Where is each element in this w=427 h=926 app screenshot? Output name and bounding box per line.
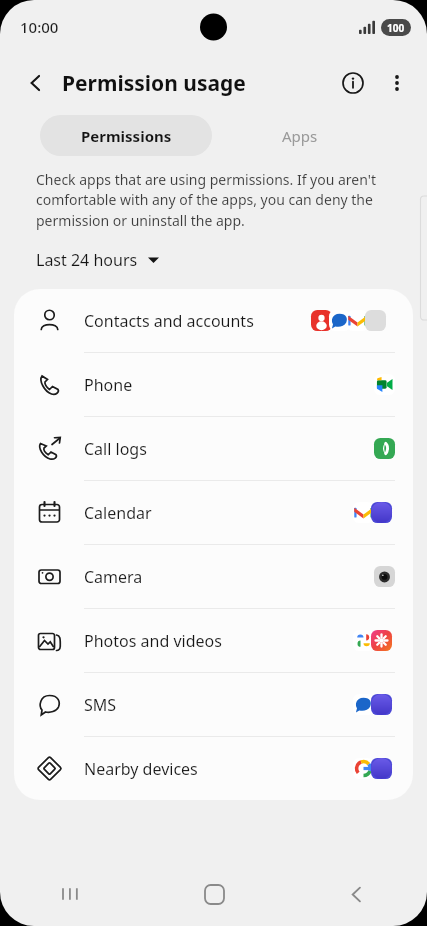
staticText: Permission usage xyxy=(62,69,246,98)
staticText: Photos and videos xyxy=(84,630,353,652)
button[interactable]: Nearby devices xyxy=(14,737,413,800)
staticText: Calendar xyxy=(84,502,353,524)
button[interactable]: Permissions xyxy=(40,115,212,156)
button[interactable]: Camera xyxy=(14,545,413,608)
button[interactable]: Back xyxy=(14,61,58,105)
staticText: Check apps that are using permissions. I… xyxy=(36,170,393,231)
staticText: SMS xyxy=(84,694,353,716)
button[interactable]: Calendar xyxy=(14,481,413,544)
staticText: 100 xyxy=(387,21,405,35)
button[interactable]: Call logs xyxy=(14,417,413,480)
button[interactable]: Home xyxy=(143,862,285,926)
button[interactable]: Phone xyxy=(14,353,413,416)
button[interactable]: Contacts and accounts xyxy=(14,289,413,352)
button[interactable]: Information xyxy=(331,61,375,105)
button[interactable]: Last 24 hours xyxy=(32,245,163,275)
button[interactable]: Photos and videos xyxy=(14,609,413,672)
button[interactable]: Recents xyxy=(0,862,143,926)
staticText: Nearby devices xyxy=(84,758,353,780)
staticText: Apps xyxy=(282,126,318,146)
staticText: Call logs xyxy=(84,438,374,460)
staticText: Last 24 hours xyxy=(36,249,138,271)
button[interactable]: SMS xyxy=(14,673,413,736)
button[interactable]: Back xyxy=(285,862,427,926)
staticText: Phone xyxy=(84,374,374,396)
button[interactable]: Apps xyxy=(212,115,387,156)
button[interactable]: More options xyxy=(375,61,419,105)
staticText: Permissions xyxy=(81,126,172,146)
staticText: Camera xyxy=(84,566,374,588)
staticText: Contacts and accounts xyxy=(84,310,311,332)
staticText: 10:00 xyxy=(20,17,59,37)
